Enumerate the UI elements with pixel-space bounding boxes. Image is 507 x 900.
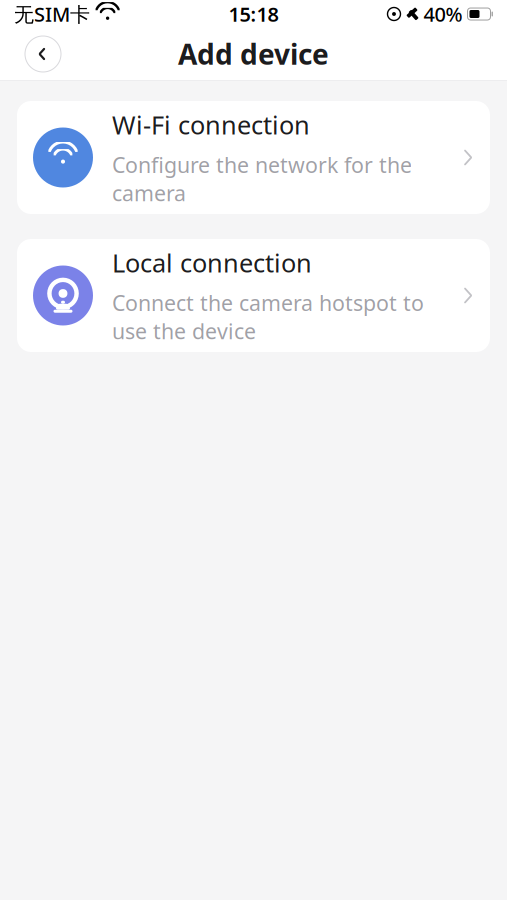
staticText: Local connection <box>112 246 312 279</box>
staticText: Wi-Fi connection <box>112 108 310 141</box>
staticText: Add device <box>178 35 329 73</box>
staticText: 无SIM卡 <box>14 1 90 27</box>
staticText: Connect the camera hotspot to use the de… <box>112 288 424 345</box>
staticText: 15:18 <box>228 1 278 27</box>
staticText: 40% <box>423 1 462 27</box>
button[interactable]: Wi-Fi connection <box>17 101 490 214</box>
button[interactable]: Back <box>19 30 67 78</box>
button[interactable]: Local connection <box>17 239 490 352</box>
staticText: Configure the network for the camera <box>112 150 412 207</box>
